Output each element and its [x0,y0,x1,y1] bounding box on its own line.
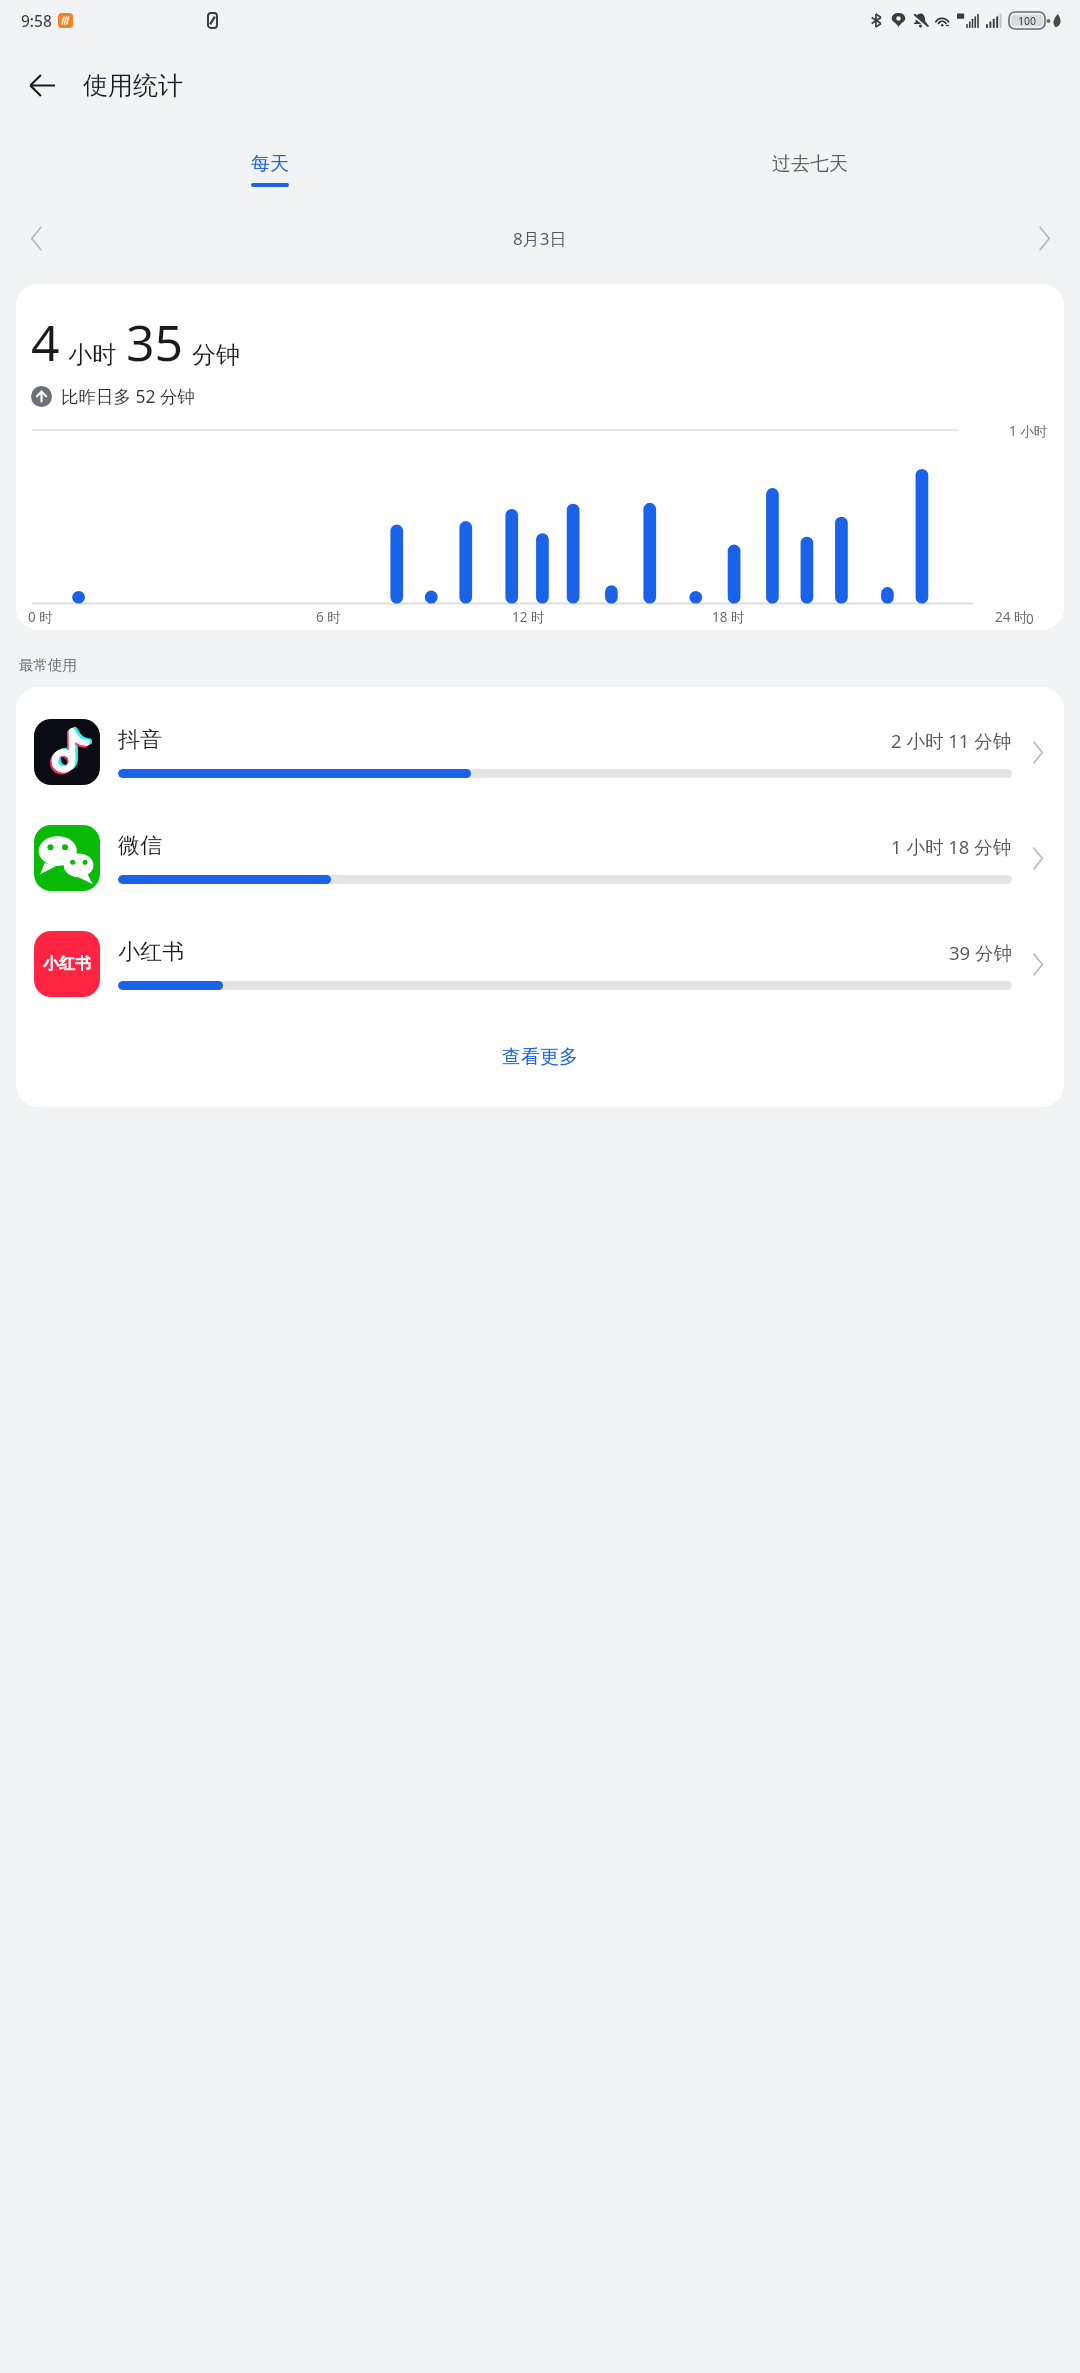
staticText: 8月3日 [513,227,567,250]
staticText: 1 小时 [1009,422,1048,440]
staticText: 小红书 [43,954,91,974]
staticText: 小时 [68,340,116,370]
staticText: 18 时 [712,608,745,626]
button[interactable]: 微信 [16,805,1064,911]
staticText: 12 时 [512,608,545,626]
staticText: 最常使用 [19,656,77,674]
button[interactable]: Next day [1022,216,1066,260]
staticText: 1 小时 18 分钟 [891,834,1012,859]
staticText: 6 时 [316,608,341,626]
staticText: 0 [1026,610,1034,628]
staticText: 0 时 [28,608,53,626]
button[interactable]: 查看更多 [16,1017,1064,1097]
staticText: 2 小时 11 分钟 [891,728,1012,753]
staticText: 微信 [118,832,162,860]
staticText: 4 [31,308,60,376]
button[interactable]: 小红书 [16,911,1064,1017]
staticText: 使用统计 [83,70,183,101]
button[interactable]: Previous day [14,216,58,260]
staticText: 查看更多 [502,1045,578,1069]
staticText: 24 时 [995,608,1028,626]
staticText: 抖音 [118,726,162,754]
button[interactable]: 过去七天 [715,148,905,191]
staticText: 比昨日多 52 分钟 [61,384,196,408]
staticText: 分钟 [192,340,240,370]
button[interactable]: 每天 [175,148,365,191]
button[interactable]: Back [19,62,65,108]
button[interactable]: 抖音 [16,699,1064,805]
staticText: 9:58 [21,10,52,31]
staticText: 过去七天 [772,152,848,176]
staticText: 100 [1018,14,1037,28]
staticText: 小红书 [118,938,184,966]
staticText: 35 [126,308,184,376]
staticText: 39 分钟 [949,940,1012,965]
staticText: 每天 [251,152,289,176]
